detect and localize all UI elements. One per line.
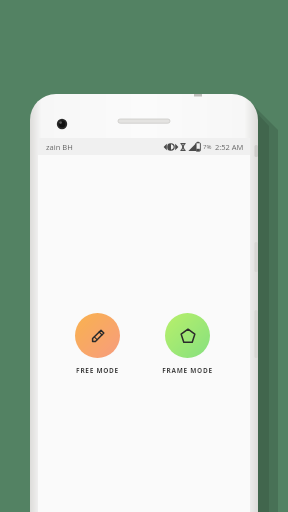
staticText: FRAME MODE: [162, 366, 213, 375]
staticText: zain BH: [46, 142, 73, 152]
staticText: 2:52 AM: [215, 142, 244, 152]
button[interactable]: Free mode: [71, 311, 124, 377]
staticText: FREE MODE: [76, 366, 119, 375]
staticText: 7%: [203, 143, 212, 151]
button[interactable]: Frame mode: [158, 311, 217, 377]
